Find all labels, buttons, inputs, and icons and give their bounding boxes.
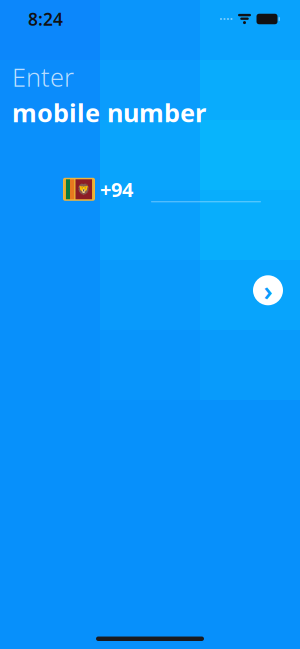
button[interactable]: Phone number — [151, 176, 261, 202]
staticText: 8:24 — [28, 7, 63, 30]
staticText: +94 — [100, 176, 133, 203]
staticText: mobile number — [12, 96, 206, 129]
button[interactable]: Next — [246, 268, 290, 312]
staticText: › — [263, 273, 272, 308]
staticText: Enter — [12, 60, 74, 94]
button[interactable]: Country code Sri Lanka plus 94 — [63, 176, 133, 202]
staticText: 🦁 — [77, 183, 90, 195]
